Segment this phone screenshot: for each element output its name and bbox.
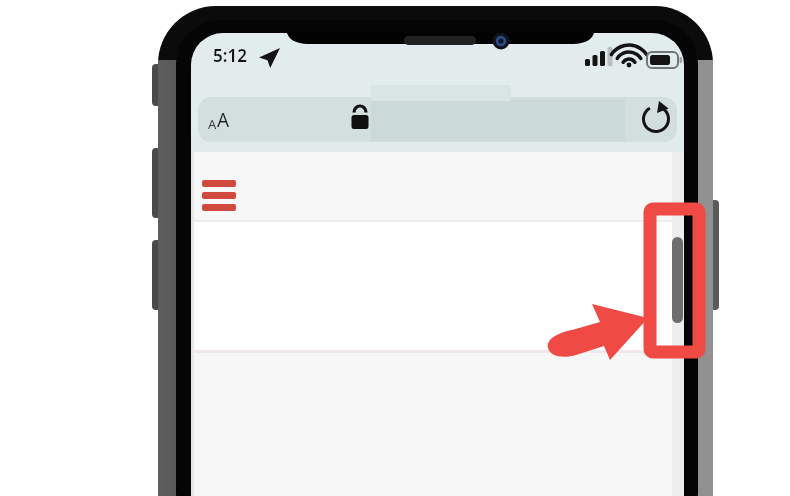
button[interactable]: Secure connection — [346, 104, 374, 134]
button[interactable]: Reload page — [638, 102, 674, 138]
staticText: A — [208, 115, 217, 133]
staticText: A — [217, 107, 230, 133]
staticText: 5:12 — [213, 44, 247, 67]
button[interactable]: Text size options — [208, 103, 254, 137]
button[interactable]: Open menu — [196, 172, 242, 212]
button[interactable]: Scroll bar — [648, 207, 700, 353]
button[interactable]: 5:12 — [213, 44, 247, 67]
